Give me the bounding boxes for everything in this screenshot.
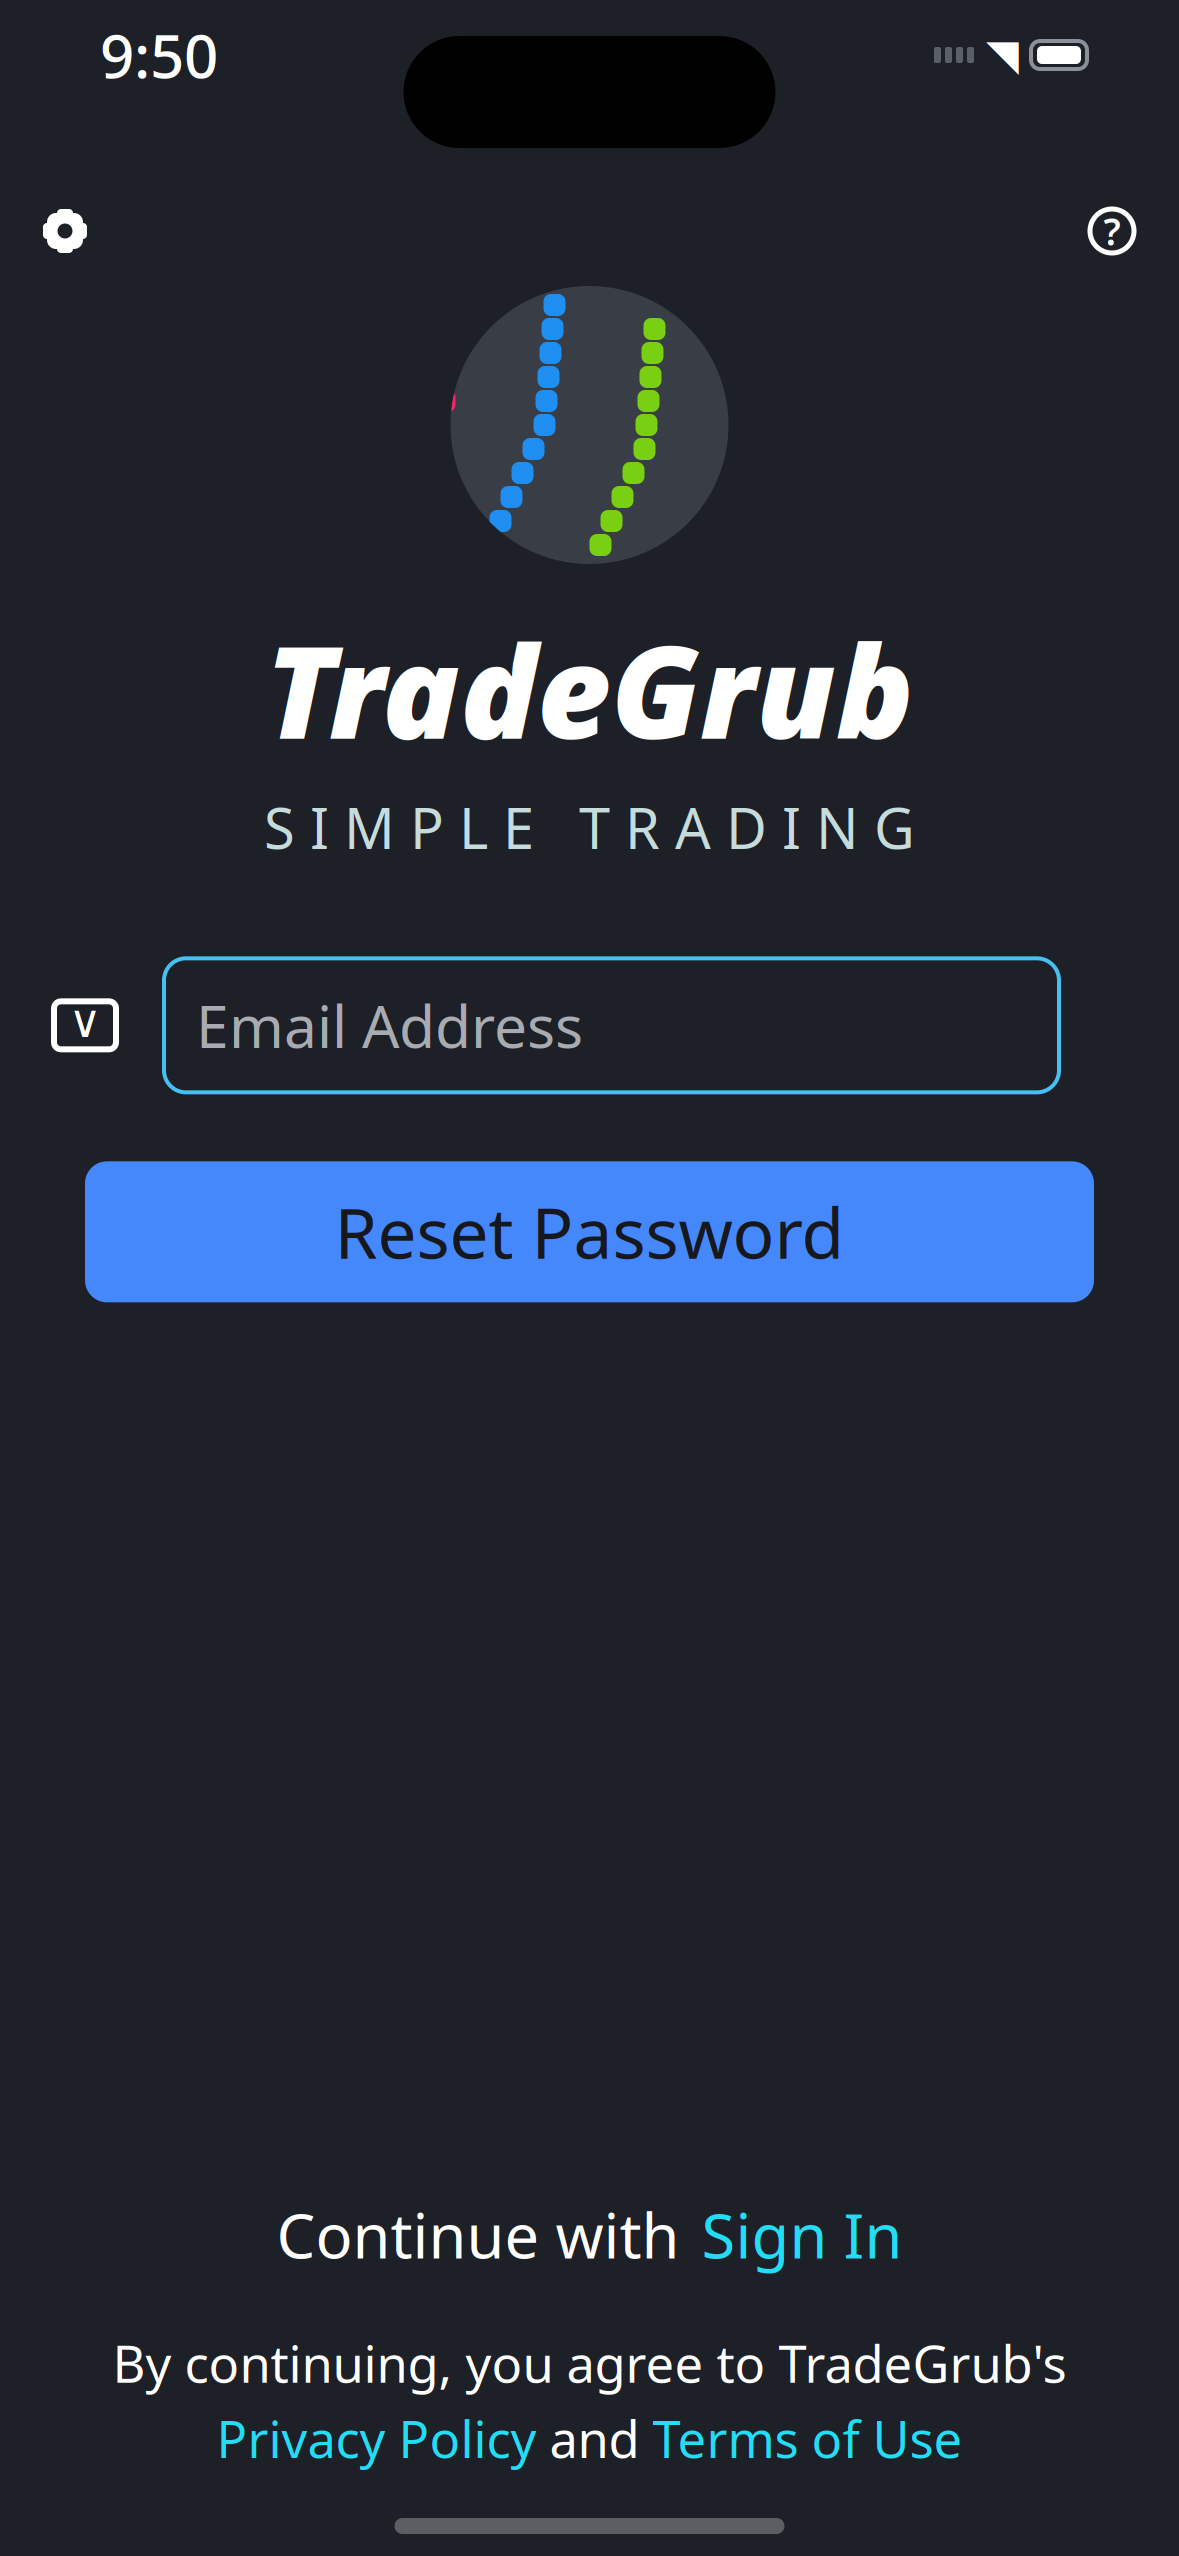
button[interactable]: Email Address: [164, 958, 1059, 1092]
staticText: S I M P L E T R A D I N G: [264, 790, 915, 864]
staticText: Terms of Use: [652, 2405, 962, 2472]
staticText: TradeGrub: [265, 604, 914, 774]
button[interactable]: Reset Password: [85, 1161, 1094, 1302]
button[interactable]: Privacy Policy: [216, 2405, 536, 2472]
staticText: 9:50: [100, 15, 218, 95]
button[interactable]: Sign In: [701, 2194, 902, 2275]
button[interactable]: Settings: [28, 194, 102, 268]
staticText: and: [536, 2405, 652, 2472]
staticText: Privacy Policy: [216, 2405, 536, 2472]
staticText: Reset Password: [334, 1186, 844, 1278]
staticText: Continue with: [276, 2194, 679, 2275]
staticText: By continuing, you agree to TradeGrub's: [112, 2329, 1066, 2397]
button[interactable]: Help: [1073, 192, 1151, 270]
button[interactable]: Terms of Use: [652, 2405, 962, 2472]
staticText: ∨: [68, 996, 101, 1047]
staticText: ?: [1103, 206, 1120, 256]
staticText: ◥: [986, 31, 1019, 79]
staticText: Sign In: [701, 2194, 902, 2275]
staticText: Email Address: [196, 986, 583, 1064]
